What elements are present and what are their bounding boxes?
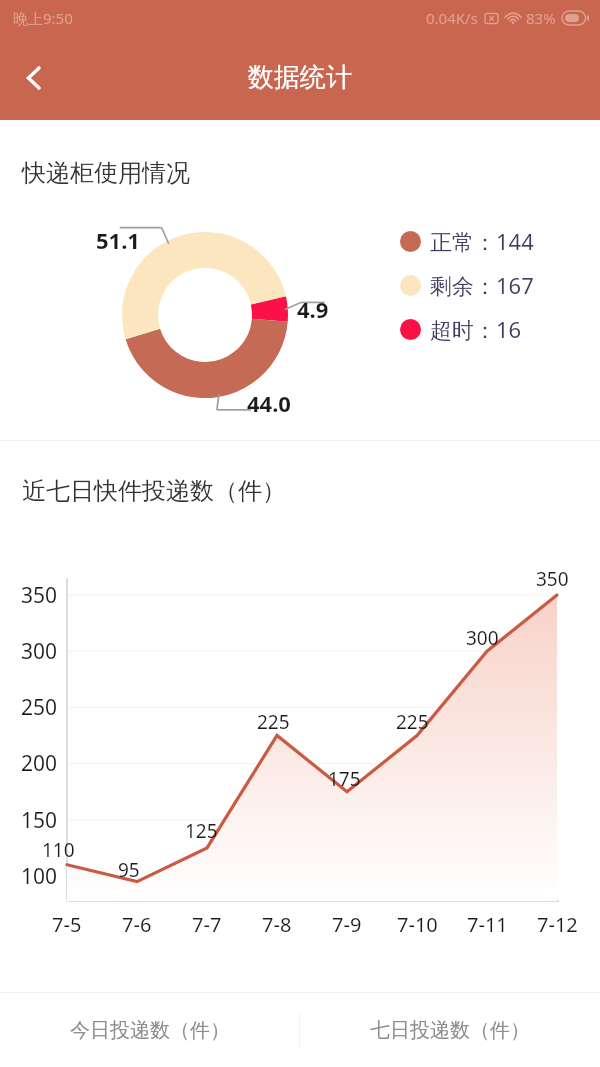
staticText: 95 (118, 857, 140, 883)
staticText: 剩余：167 (430, 270, 534, 300)
staticText: 250 (21, 693, 58, 722)
staticText: 175 (328, 766, 361, 792)
staticText: 今日投递数（件） (70, 1018, 230, 1043)
staticText: 7-10 (397, 911, 438, 938)
button[interactable]: 今日投递数（件） (0, 993, 299, 1067)
staticText: 100 (21, 862, 58, 891)
staticText: 4.9 (297, 294, 329, 324)
button[interactable]: 七日投递数（件） (300, 993, 600, 1067)
staticText: 7-9 (332, 911, 362, 938)
staticText: 110 (42, 837, 75, 863)
staticText: 七日投递数（件） (370, 1018, 530, 1043)
staticText: 225 (257, 709, 290, 735)
staticText: 快递柜使用情况 (22, 158, 190, 188)
staticText: 350 (536, 566, 569, 592)
staticText: 7-6 (122, 911, 152, 938)
staticText: 正常：144 (430, 226, 534, 256)
staticText: 超时：16 (430, 314, 522, 344)
staticText: 83% (526, 8, 556, 28)
staticText: 200 (21, 749, 58, 778)
button[interactable]: 超时：16 (400, 314, 522, 344)
staticText: 7-11 (467, 911, 508, 938)
button[interactable]: 正常：144 (400, 226, 534, 256)
staticText: 7-8 (262, 911, 292, 938)
staticText: 125 (185, 818, 218, 844)
staticText: 晚上9:50 (13, 8, 73, 28)
staticText: 150 (21, 806, 58, 835)
staticText: 51.1 (96, 225, 140, 255)
staticText: 数据统计 (248, 61, 352, 94)
staticText: 近七日快件投递数（件） (22, 476, 286, 506)
staticText: 300 (466, 625, 499, 651)
button[interactable]: 剩余：167 (400, 270, 534, 300)
staticText: 7-7 (192, 911, 222, 938)
staticText: 350 (21, 581, 58, 610)
staticText: 0.04K/s (426, 8, 478, 28)
staticText: 300 (21, 637, 58, 666)
button[interactable]: Back (6, 50, 62, 106)
staticText: 7-5 (52, 911, 82, 938)
staticText: 44.0 (247, 388, 291, 418)
staticText: 7-12 (537, 911, 578, 938)
staticText: 225 (396, 709, 429, 735)
